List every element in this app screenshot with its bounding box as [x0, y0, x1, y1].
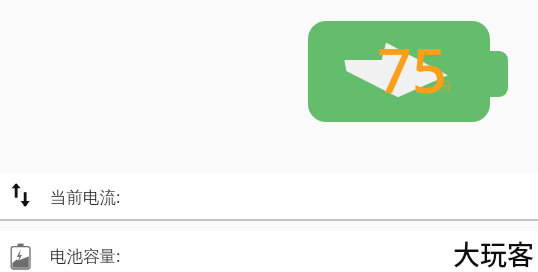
other: Battery capacity: [9, 242, 37, 270]
other: Current: [9, 182, 37, 210]
staticText: 75: [377, 28, 447, 111]
staticText: 分: [440, 78, 452, 93]
button[interactable]: Current: [0, 173, 538, 219]
button[interactable]: Battery capacity: [0, 231, 538, 272]
other: Battery level 75: [306, 18, 508, 126]
staticText: 电池容量:: [50, 244, 121, 267]
staticText: 大玩客: [453, 234, 534, 272]
staticText: 当前电流:: [50, 185, 121, 208]
